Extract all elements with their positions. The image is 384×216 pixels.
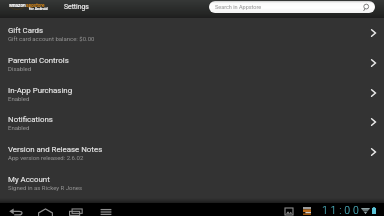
staticText: Parental Controls xyxy=(8,56,69,65)
button[interactable]: Recent apps xyxy=(69,208,83,216)
staticText: Search in Appstore xyxy=(215,4,262,10)
staticText: Enabled xyxy=(8,95,30,102)
staticText: amazon xyxy=(9,3,26,9)
staticText: Disabled xyxy=(8,65,32,72)
staticText: In-App Purchasing xyxy=(8,86,73,95)
button[interactable]: My Account xyxy=(0,169,384,199)
staticText: My Account xyxy=(8,175,50,184)
button[interactable]: Search in Appstore xyxy=(209,1,375,13)
button[interactable]: Back xyxy=(9,208,22,216)
staticText: Signed in as Rickey R Jones xyxy=(8,184,83,191)
staticText: Gift card account balance: $0.00 xyxy=(8,35,95,42)
staticText: for Android xyxy=(29,7,48,11)
staticText: 11:00 xyxy=(322,204,362,216)
button[interactable]: Parental Controls xyxy=(0,50,384,80)
staticText: Settings xyxy=(64,3,89,11)
staticText: Enabled xyxy=(8,124,30,131)
button[interactable]: Notifications xyxy=(0,109,384,139)
button[interactable]: Version and Release Notes xyxy=(0,139,384,169)
button[interactable]: In-App Purchasing xyxy=(0,80,384,110)
staticText: Notifications xyxy=(8,115,53,124)
staticText: Gift Cards xyxy=(8,26,44,35)
staticText: appstore xyxy=(26,3,45,9)
button[interactable]: Gift Cards xyxy=(0,20,384,50)
staticText: App version released: 2.6.02 xyxy=(8,154,84,161)
button[interactable]: Home xyxy=(38,208,53,216)
button[interactable]: Menu xyxy=(100,208,112,216)
staticText: Version and Release Notes xyxy=(8,145,103,154)
